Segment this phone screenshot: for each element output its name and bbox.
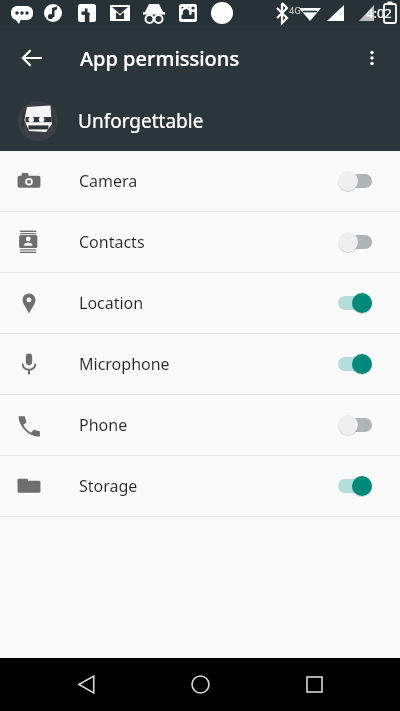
staticText: Storage: [79, 475, 332, 497]
button[interactable]: Microphone: [0, 334, 400, 394]
staticText: 4:02: [366, 4, 392, 22]
button[interactable]: Storage: [0, 456, 400, 516]
button[interactable]: Phone: [0, 395, 400, 455]
button[interactable]: Phone permission toggle: [332, 405, 384, 445]
staticText: Location: [79, 292, 332, 314]
button[interactable]: Storage permission toggle: [332, 466, 384, 506]
button[interactable]: Contacts permission toggle: [332, 222, 384, 262]
button[interactable]: Camera permission toggle: [332, 161, 384, 201]
staticText: Camera: [79, 170, 332, 192]
staticText: App permissions: [80, 45, 240, 72]
button[interactable]: Back: [8, 34, 56, 82]
button[interactable]: Unforgettable: [0, 90, 400, 151]
button[interactable]: Microphone permission toggle: [332, 344, 384, 384]
staticText: 4G: [289, 4, 301, 16]
staticText: Unforgettable: [78, 108, 204, 134]
button[interactable]: Back: [58, 658, 114, 711]
staticText: Microphone: [79, 353, 332, 375]
button[interactable]: Camera: [0, 151, 400, 211]
staticText: Contacts: [79, 231, 332, 253]
button[interactable]: Location: [0, 273, 400, 333]
button[interactable]: Home: [172, 658, 228, 711]
button[interactable]: Location permission toggle: [332, 283, 384, 323]
button[interactable]: More options: [348, 34, 396, 82]
button[interactable]: Recent apps: [286, 658, 342, 711]
staticText: Phone: [79, 414, 332, 436]
button[interactable]: Contacts: [0, 212, 400, 272]
